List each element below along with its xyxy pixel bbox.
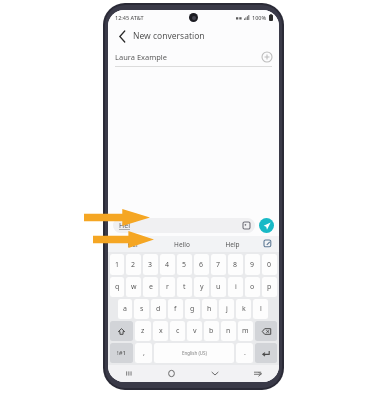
button[interactable]: o xyxy=(245,277,260,297)
button[interactable]: z xyxy=(135,321,151,341)
button[interactable]: c xyxy=(170,321,185,341)
button[interactable]: x xyxy=(153,321,168,341)
button[interactable]: , xyxy=(135,343,152,363)
staticText: q xyxy=(115,282,120,292)
button[interactable]: 1 xyxy=(110,254,124,275)
staticText: t xyxy=(183,282,186,292)
button[interactable]: Recents xyxy=(108,365,150,382)
staticText: r xyxy=(166,282,169,292)
button[interactable]: v xyxy=(187,321,202,341)
button[interactable]: m xyxy=(238,321,253,341)
button[interactable]: English (US) xyxy=(154,343,234,363)
button[interactable]: Home xyxy=(150,365,193,382)
staticText: a xyxy=(123,304,127,314)
staticText: l xyxy=(260,304,262,314)
button[interactable]: q xyxy=(110,277,124,297)
staticText: z xyxy=(141,326,145,336)
button[interactable]: y xyxy=(194,277,209,297)
staticText: y xyxy=(200,282,204,292)
button[interactable]: Sticker xyxy=(242,221,251,230)
button[interactable]: s xyxy=(134,299,149,319)
button[interactable]: Hide keyboard xyxy=(236,365,279,382)
button[interactable]: 4 xyxy=(160,254,175,275)
button[interactable]: u xyxy=(211,277,226,297)
button[interactable]: Keyboard options xyxy=(257,236,279,252)
staticText: w xyxy=(131,282,137,292)
button[interactable]: a xyxy=(118,299,132,319)
staticText: 8 xyxy=(233,260,238,270)
button[interactable]: Hello xyxy=(157,236,207,252)
staticText: New conversation xyxy=(133,30,205,42)
button[interactable]: 0 xyxy=(262,254,277,275)
staticText: 4 xyxy=(165,260,170,270)
button[interactable]: j xyxy=(219,299,234,319)
staticText: Hello xyxy=(174,240,190,249)
staticText: g xyxy=(190,304,195,314)
staticText: x xyxy=(159,326,163,336)
button[interactable]: h xyxy=(202,299,217,319)
button[interactable]: !#1 xyxy=(110,343,133,363)
staticText: Help xyxy=(225,240,240,249)
button[interactable]: k xyxy=(236,299,251,319)
button[interactable]: 7 xyxy=(211,254,226,275)
button[interactable]: Back xyxy=(193,365,236,382)
button[interactable]: Hel xyxy=(108,236,157,252)
staticText: 9 xyxy=(250,260,255,270)
staticText: 12:45 AT&T xyxy=(115,14,144,21)
staticText: c xyxy=(176,326,180,336)
button[interactable]: 5 xyxy=(177,254,192,275)
staticText: h xyxy=(207,304,212,314)
button[interactable]: t xyxy=(177,277,192,297)
button[interactable]: Add recipient xyxy=(261,51,272,62)
staticText: i xyxy=(235,282,237,292)
staticText: !#1 xyxy=(117,349,126,357)
button[interactable]: w xyxy=(126,277,141,297)
button[interactable]: p xyxy=(262,277,277,297)
button[interactable]: e xyxy=(143,277,158,297)
staticText: v xyxy=(193,326,197,336)
staticText: 5 xyxy=(182,260,187,270)
button[interactable]: Help xyxy=(207,236,257,252)
button[interactable]: 8 xyxy=(228,254,243,275)
button[interactable]: b xyxy=(204,321,219,341)
button[interactable]: i xyxy=(228,277,243,297)
staticText: m xyxy=(242,326,249,336)
button[interactable]: r xyxy=(160,277,175,297)
staticText: 0 xyxy=(267,260,272,270)
button[interactable]: g xyxy=(185,299,200,319)
staticText: k xyxy=(242,304,246,314)
button[interactable]: Hel xyxy=(113,218,255,233)
staticText: f xyxy=(174,304,177,314)
button[interactable]: . xyxy=(236,343,253,363)
button[interactable]: Backspace xyxy=(255,321,277,341)
button[interactable]: Shift xyxy=(110,321,133,341)
staticText: Hel xyxy=(127,240,138,249)
staticText: 2 xyxy=(131,260,136,270)
button[interactable]: Laura Example xyxy=(108,47,279,66)
button[interactable]: n xyxy=(221,321,236,341)
staticText: s xyxy=(140,304,144,314)
staticText: b xyxy=(209,326,214,336)
button[interactable]: Enter xyxy=(255,343,277,363)
staticText: Laura Example xyxy=(115,52,261,62)
staticText: d xyxy=(156,304,161,314)
button[interactable]: 2 xyxy=(126,254,141,275)
button[interactable]: d xyxy=(151,299,166,319)
staticText: . xyxy=(244,348,246,358)
button[interactable]: Send xyxy=(259,218,274,233)
staticText: o xyxy=(250,282,255,292)
button[interactable]: l xyxy=(253,299,268,319)
staticText: 7 xyxy=(216,260,221,270)
button[interactable]: 9 xyxy=(245,254,260,275)
staticText: p xyxy=(267,282,272,292)
staticText: Hel xyxy=(119,221,242,231)
button[interactable]: 3 xyxy=(143,254,158,275)
staticText: n xyxy=(226,326,231,336)
button[interactable]: 6 xyxy=(194,254,209,275)
staticText: j xyxy=(226,304,228,314)
button[interactable]: f xyxy=(168,299,183,319)
staticText: u xyxy=(216,282,221,292)
staticText: , xyxy=(143,348,145,358)
button[interactable]: Back xyxy=(114,28,130,44)
staticText: English (US) xyxy=(182,350,207,356)
